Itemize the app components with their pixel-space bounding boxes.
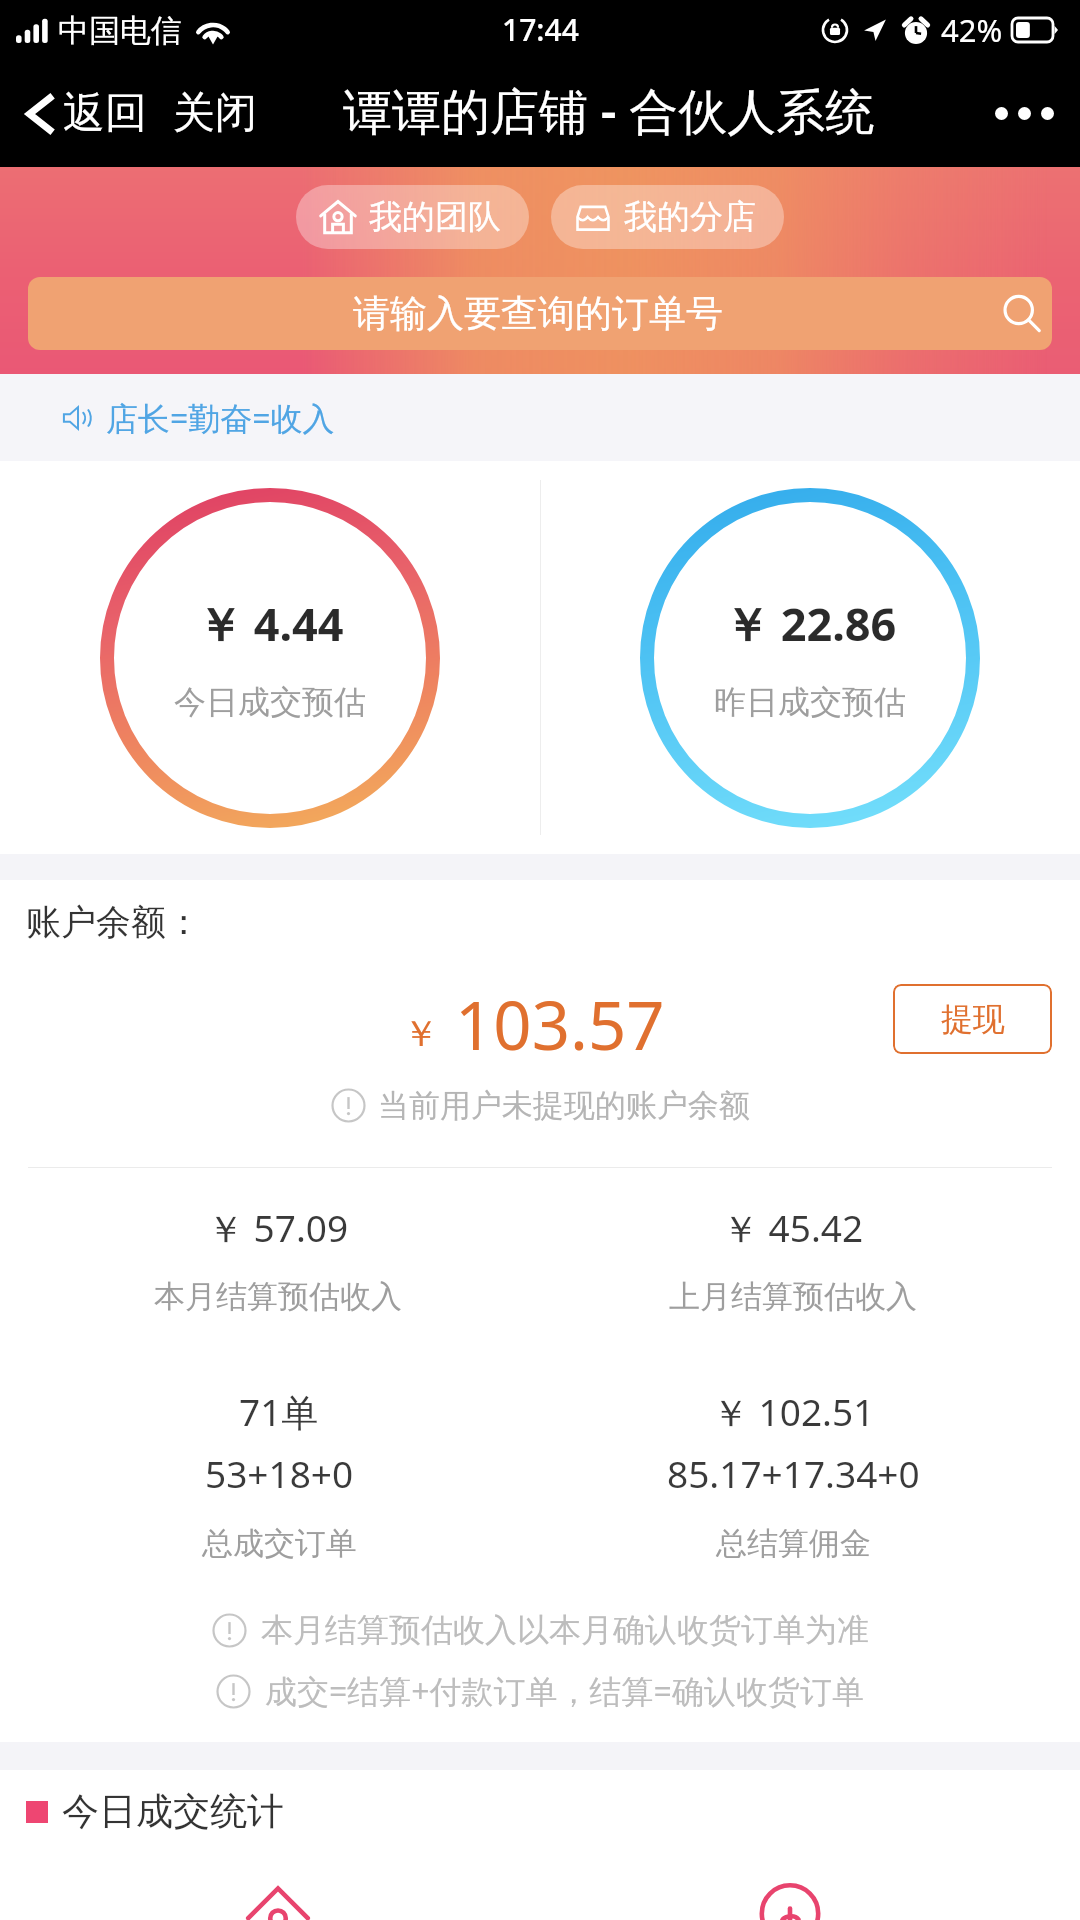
staticText: 总成交订单 [202, 1524, 357, 1563]
staticText: 53+18+0 [205, 1448, 354, 1498]
staticText: 71单 [239, 1386, 319, 1437]
staticText: 昨日成交预估 [714, 682, 906, 722]
staticText: 103.57 [455, 978, 665, 1064]
button[interactable]: 成交统计 [244, 1881, 312, 1910]
staticText: 42% [941, 9, 1003, 51]
button[interactable]: 提现 [893, 984, 1052, 1054]
staticText: 店长=勤奋=收入 [106, 396, 335, 440]
staticText: 总结算佣金 [716, 1524, 871, 1563]
button[interactable]: 更多 [995, 107, 1054, 120]
staticText: 返回 [63, 87, 147, 140]
staticText: 我的团队 [369, 196, 501, 238]
staticText: ￥ 102.51 [712, 1386, 875, 1437]
button[interactable]: 我的分店 [551, 185, 784, 249]
staticText: 当前用户未提现的账户余额 [378, 1086, 750, 1125]
staticText: 本月结算预估收入 [154, 1277, 402, 1316]
staticText: ￥ [403, 1011, 439, 1056]
staticText: 17:44 [502, 9, 579, 50]
staticText: 85.17+17.34+0 [667, 1448, 920, 1498]
button[interactable]: 结算佣金 [758, 1899, 822, 1920]
staticText: ￥ 22.86 [724, 593, 897, 654]
staticText: 今日成交预估 [174, 682, 366, 722]
staticText: ￥ 4.44 [197, 593, 344, 654]
staticText: 谭谭的店铺 - 合伙人系统 [343, 77, 875, 144]
staticText: 提现 [941, 999, 1005, 1039]
staticText: 账户余额： [26, 900, 201, 944]
staticText: 请输入要查询的订单号 [74, 290, 1002, 337]
button[interactable]: 返回 [22, 87, 147, 140]
button[interactable]: 请输入要查询的订单号 [28, 277, 1052, 350]
staticText: 我的分店 [624, 196, 756, 238]
staticText: ￥ 45.42 [722, 1202, 864, 1253]
button[interactable]: 关闭 [173, 87, 257, 140]
button[interactable]: 我的团队 [296, 185, 529, 249]
staticText: 上月结算预估收入 [669, 1277, 917, 1316]
button[interactable]: 店长=勤奋=收入 [0, 374, 1080, 461]
staticText: 今日成交统计 [62, 1788, 284, 1835]
staticText: 成交=结算+付款订单，结算=确认收货订单 [265, 1669, 864, 1713]
staticText: 本月结算预估收入以本月确认收货订单为准 [261, 1610, 869, 1650]
staticText: 中国电信 [58, 11, 182, 50]
staticText: ￥ 57.09 [207, 1202, 349, 1253]
